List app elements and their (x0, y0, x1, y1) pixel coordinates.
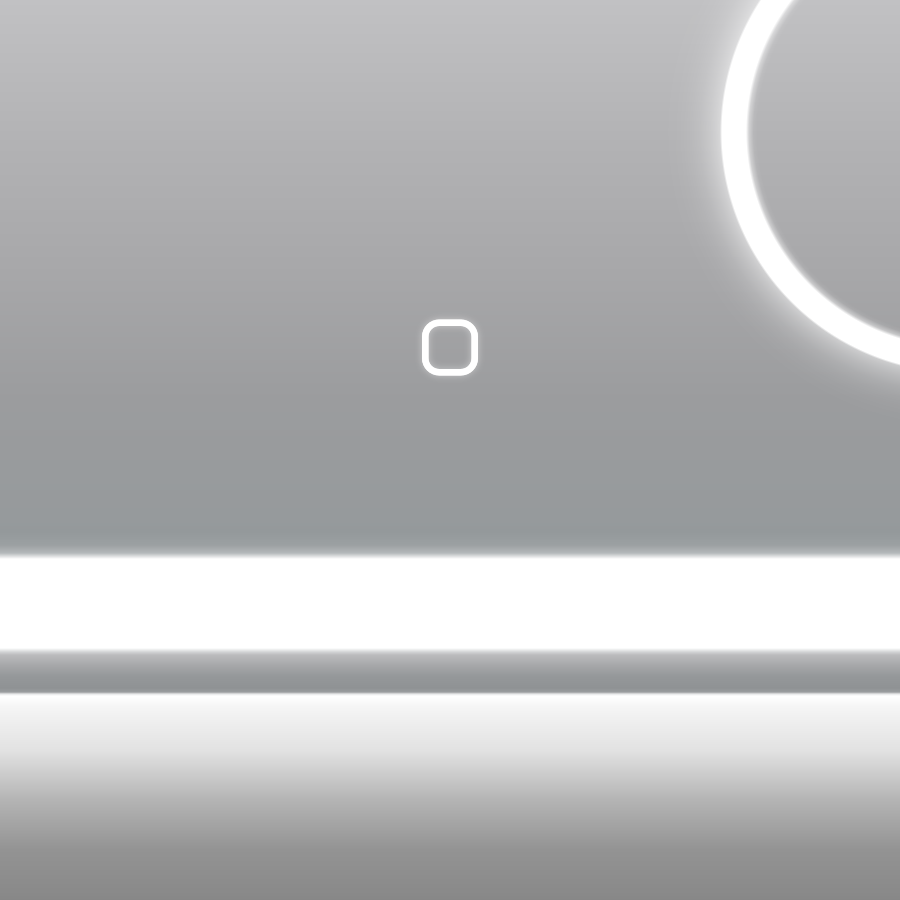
button[interactable]: Activity progress (662, 0, 900, 432)
button[interactable]: Stop (408, 305, 492, 389)
